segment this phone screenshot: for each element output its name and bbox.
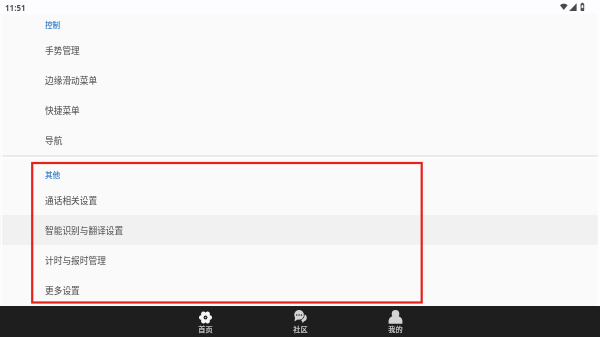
staticText: 其他 [45,169,61,180]
staticText: 手势管理 [45,44,80,57]
staticText: 计时与报时管理 [45,254,106,267]
staticText: 首页 [198,324,213,334]
staticText: 智能识别与翻译设置 [45,224,124,237]
staticText: 我的 [388,324,403,334]
staticText: 通话相关设置 [45,194,98,207]
button[interactable]: 边缘滑动菜单 [0,65,600,95]
staticText: 边缘滑动菜单 [45,74,98,87]
staticText: 更多设置 [45,284,80,297]
staticText: 快捷菜单 [45,104,80,117]
staticText: 控制 [45,19,61,30]
button[interactable]: 导航 [0,125,600,155]
button[interactable]: 快捷菜单 [0,95,600,125]
button[interactable]: 智能识别与翻译设置 [0,215,600,245]
button[interactable]: 通话相关设置 [0,185,600,215]
staticText: 11:51 [5,2,26,13]
staticText: 社区 [293,324,308,334]
button[interactable]: 社区 [253,306,348,337]
button[interactable]: 更多设置 [0,275,600,305]
button[interactable]: 手势管理 [0,35,600,65]
button[interactable]: 首页 [158,306,253,337]
staticText: 导航 [45,134,63,147]
button[interactable]: 计时与报时管理 [0,245,600,275]
button[interactable]: 我的 [348,306,443,337]
